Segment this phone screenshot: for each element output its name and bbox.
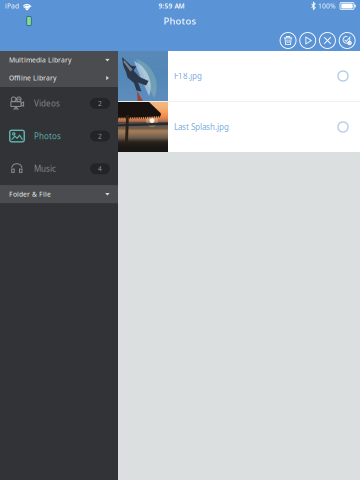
button[interactable]: Delete: [278, 31, 298, 49]
staticText: Multimedia Library: [9, 56, 72, 64]
button[interactable]: Close: [318, 31, 337, 49]
staticText: Folder & File: [9, 190, 51, 199]
staticText: Videos: [34, 98, 60, 109]
button[interactable]: Select options: [337, 31, 357, 49]
button[interactable]: Videos: [0, 87, 118, 120]
button[interactable]: Folder & File: [0, 185, 118, 203]
button[interactable]: Offline Library: [0, 69, 118, 87]
staticText: iPad: [5, 2, 19, 10]
button[interactable]: Multimedia Library: [0, 51, 118, 69]
staticText: Music: [34, 163, 56, 174]
staticText: Last Splash.jpg: [174, 122, 229, 132]
staticText: 2: [98, 99, 102, 108]
button[interactable]: Play: [298, 31, 318, 49]
button[interactable]: Last Splash.jpg: [118, 102, 360, 152]
button[interactable]: F18.jpg: [118, 51, 360, 101]
staticText: F18.jpg: [174, 71, 202, 81]
button[interactable]: Photos: [0, 120, 118, 152]
button[interactable]: Music: [0, 152, 118, 185]
staticText: 2: [98, 132, 102, 140]
staticText: Offline Library: [9, 74, 57, 82]
staticText: Photos: [34, 131, 61, 141]
staticText: 9:59 AM: [158, 2, 184, 10]
staticText: Photos: [163, 15, 196, 27]
button[interactable]: Storage status: [20, 12, 38, 30]
staticText: 100%: [318, 2, 336, 10]
staticText: 4: [98, 164, 102, 173]
